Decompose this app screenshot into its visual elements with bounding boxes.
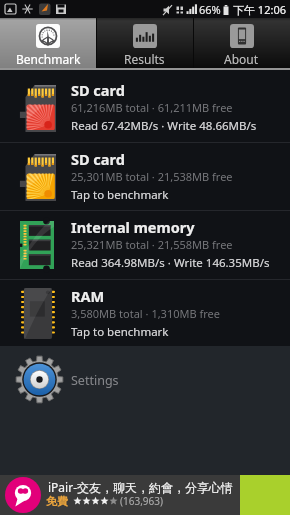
- staticText: About: [224, 51, 259, 67]
- button[interactable]: RAM: [0, 279, 290, 347]
- staticText: Tap to benchmark: [71, 187, 169, 203]
- button[interactable]: Internal memory: [0, 210, 290, 278]
- button[interactable]: SD card: [0, 73, 290, 141]
- staticText: SD card: [71, 80, 125, 100]
- staticText: 25,321MB total · 21,558MB free: [71, 237, 233, 252]
- staticText: Settings: [71, 372, 119, 389]
- staticText: 下午 12:06: [233, 2, 286, 17]
- button[interactable]: Benchmark: [0, 18, 96, 68]
- staticText: 25,301MB total · 21,538MB free: [71, 169, 233, 184]
- staticText: Read 67.42MB/s · Write 48.66MB/s: [71, 118, 257, 134]
- staticText: 3,580MB total · 1,310MB free: [71, 306, 220, 321]
- staticText: (163,963): [120, 494, 163, 508]
- staticText: SD card: [71, 149, 125, 169]
- button[interactable]: Results: [96, 18, 193, 68]
- button[interactable]: SD card: [0, 142, 290, 210]
- staticText: Read 364.98MB/s · Write 146.35MB/s: [71, 255, 270, 271]
- staticText: Internal memory: [71, 217, 195, 237]
- staticText: 61,216MB total · 61,211MB free: [71, 100, 233, 115]
- staticText: Tap to benchmark: [71, 324, 169, 340]
- button[interactable]: About: [193, 18, 290, 68]
- staticText: iPair-交友，聊天，約會，分享心情: [48, 479, 234, 495]
- staticText: Benchmark: [16, 51, 81, 67]
- staticText: 66%: [199, 2, 221, 17]
- staticText: Results: [124, 51, 165, 67]
- staticText: 免費: [46, 494, 68, 508]
- button[interactable]: Settings: [0, 346, 290, 410]
- staticText: RAM: [71, 286, 105, 306]
